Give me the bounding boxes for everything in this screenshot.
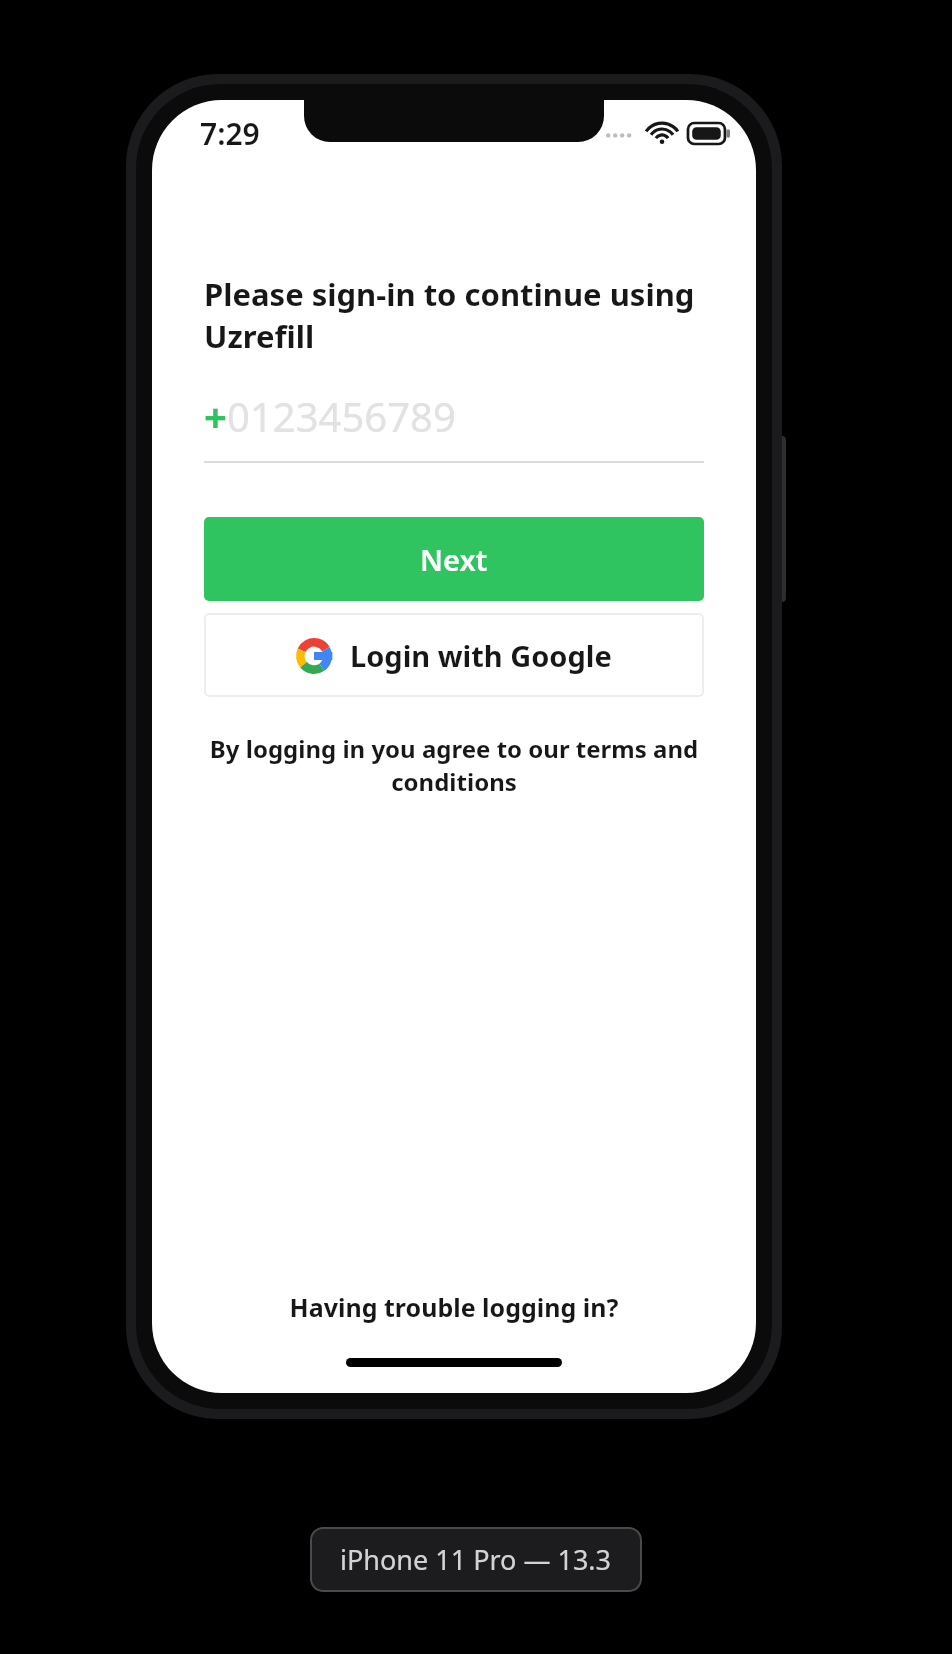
staticText: + [204, 389, 227, 443]
staticText: iPhone 11 Pro — 13.3 [340, 1541, 612, 1578]
staticText: Next [420, 540, 488, 579]
staticText: 7:29 [200, 113, 260, 154]
staticText: Please sign-in to continue using Uzrefil… [204, 273, 736, 357]
button[interactable]: Login with Google [204, 613, 704, 697]
button[interactable]: By logging in you agree to our terms and… [172, 732, 736, 798]
staticText: Login with Google [350, 636, 612, 675]
button[interactable]: iPhone 11 Pro — 13.3 [310, 1527, 642, 1592]
button[interactable]: Next [204, 517, 704, 601]
staticText: 0123456789 [227, 389, 456, 443]
button[interactable]: Having trouble logging in? [152, 1290, 756, 1324]
